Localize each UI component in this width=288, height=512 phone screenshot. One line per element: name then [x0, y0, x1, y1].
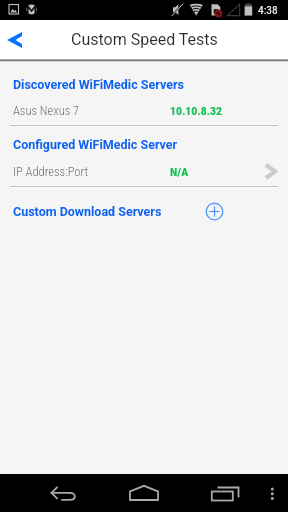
button[interactable]: Custom Download Servers [0, 196, 288, 226]
button[interactable]: IP Address:Port [0, 161, 288, 182]
staticText: 4:38 [258, 3, 278, 16]
button[interactable]: Recent apps [200, 474, 248, 512]
button[interactable]: Back [40, 474, 88, 512]
button[interactable]: Home [120, 474, 168, 512]
staticText: Discovered WiFiMedic Servers [13, 77, 184, 92]
staticText: Configured WiFiMedic Server [13, 137, 178, 152]
button[interactable]: More options [258, 474, 288, 512]
staticText: N/A [170, 165, 189, 179]
staticText: Custom Speed Tests [71, 30, 218, 49]
button[interactable]: Back [0, 20, 32, 59]
button[interactable]: Open configured server [253, 156, 285, 187]
staticText: 10.10.8.32 [170, 104, 223, 118]
button[interactable]: Add custom download server [198, 196, 230, 226]
staticText: Asus Nexus 7 [13, 103, 80, 118]
button[interactable]: Asus Nexus 7 [0, 100, 288, 121]
staticText: Custom Download Servers [13, 204, 162, 219]
staticText: IP Address:Port [13, 164, 89, 179]
